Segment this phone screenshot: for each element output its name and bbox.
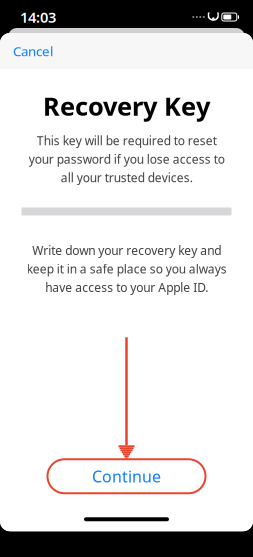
staticText: Write down your recovery key and keep it… <box>26 242 226 295</box>
button[interactable]: Continue <box>47 459 205 493</box>
staticText: 14:03 <box>20 7 56 27</box>
staticText: This key will be required to reset your … <box>28 133 224 185</box>
staticText: Continue <box>92 466 161 487</box>
staticText: Recovery Key <box>43 89 210 123</box>
button[interactable]: Cancel <box>0 34 53 68</box>
staticText: Cancel <box>13 42 53 60</box>
